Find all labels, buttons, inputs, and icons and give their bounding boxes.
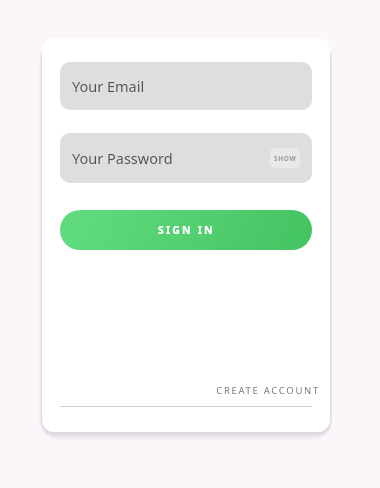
staticText: SHOW <box>274 154 297 163</box>
button[interactable]: SHOW <box>270 148 300 168</box>
button[interactable]: SIGN IN <box>60 210 312 250</box>
button[interactable]: Your Email <box>60 62 312 110</box>
staticText: SIGN IN <box>158 223 215 237</box>
staticText: Your Email <box>72 76 145 96</box>
button[interactable]: CREATE ACCOUNT <box>42 384 330 397</box>
staticText: Your Password <box>72 148 173 168</box>
staticText: CREATE ACCOUNT <box>216 384 320 397</box>
button[interactable]: Your Password <box>60 133 312 183</box>
